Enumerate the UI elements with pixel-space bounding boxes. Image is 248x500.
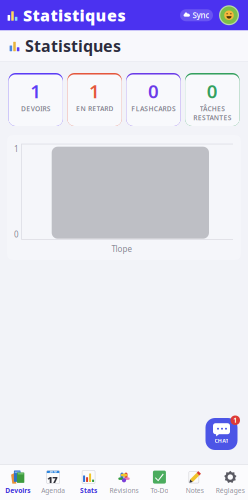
button[interactable]: To-Do (142, 465, 177, 499)
staticText: 0 (14, 229, 19, 240)
button[interactable]: 0 (185, 73, 239, 126)
staticText: DEVOIRS (21, 104, 51, 113)
staticText: FLASHCARDS (131, 104, 176, 113)
staticText: Devoirs (5, 486, 30, 495)
staticText: To-Do (150, 486, 168, 495)
staticText: TÂCHES RESTANTES (193, 104, 231, 122)
button[interactable]: Réglages (213, 465, 248, 499)
button[interactable]: Révisions (106, 465, 142, 499)
staticText: Sync (192, 10, 209, 20)
button[interactable]: Devoirs (0, 465, 35, 499)
staticText: 1 (233, 416, 237, 425)
staticText: 0 (148, 78, 159, 103)
staticText: 0 (207, 78, 218, 103)
button[interactable]: July (35, 465, 71, 499)
button[interactable]: Chat (205, 415, 240, 450)
button[interactable]: 0 (126, 73, 181, 126)
staticText: Statistiques (25, 35, 121, 56)
staticText: 17 (47, 473, 57, 486)
button[interactable]: 1 (8, 73, 63, 126)
staticText: Notes (186, 486, 204, 495)
staticText: July (50, 468, 57, 473)
button[interactable]: Profile (219, 5, 239, 25)
staticText: Statistiques (23, 5, 125, 26)
staticText: 1 (14, 144, 19, 154)
staticText: 1 (30, 78, 41, 103)
staticText: 1 (89, 78, 100, 103)
staticText: CHAT (215, 437, 228, 444)
staticText: Révisions (109, 486, 138, 495)
staticText: Réglages (216, 486, 245, 495)
button[interactable]: Notes (177, 465, 212, 499)
staticText: EN RETARD (76, 104, 113, 113)
button[interactable]: Sync (180, 9, 213, 21)
staticText: Agenda (41, 486, 65, 495)
button[interactable]: Stats (71, 465, 106, 499)
button[interactable]: 1 (67, 73, 122, 126)
staticText: Tlope (111, 244, 132, 254)
staticText: Stats (80, 486, 97, 495)
